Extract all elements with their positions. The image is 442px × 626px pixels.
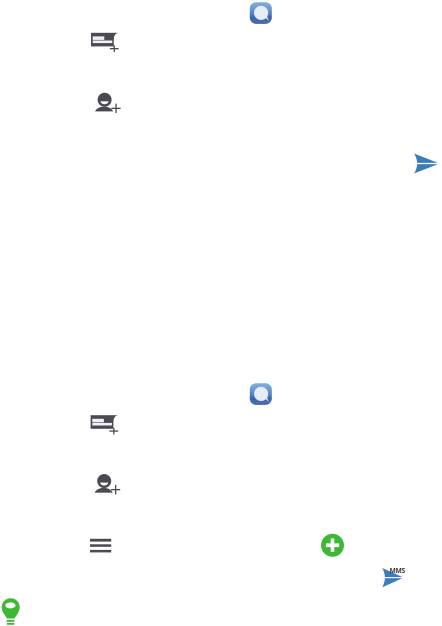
button[interactable]: Menu: [90, 539, 111, 552]
button[interactable]: Send: [414, 153, 438, 173]
button[interactable]: New message: [91, 33, 121, 55]
button[interactable]: New message: [91, 415, 121, 437]
button[interactable]: Tip: [1, 598, 21, 626]
button[interactable]: Add contact: [95, 92, 125, 114]
button[interactable]: Add contact: [95, 473, 125, 495]
staticText: MMS: [389, 566, 405, 575]
button[interactable]: Add: [321, 534, 344, 557]
button[interactable]: Messages app: [250, 383, 272, 405]
button[interactable]: Messages app: [250, 2, 272, 24]
button[interactable]: Send MMS: [382, 568, 408, 590]
